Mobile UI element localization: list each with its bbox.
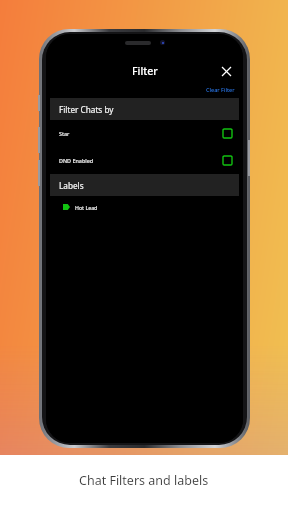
button[interactable]: Star [46, 120, 243, 147]
button[interactable]: Labels [50, 174, 239, 196]
staticText: Labels [59, 180, 84, 191]
staticText: Hot Lead [75, 204, 98, 211]
staticText: Star [59, 130, 70, 137]
staticText: Clear Filter [206, 86, 235, 93]
button[interactable]: Clear Filter [206, 84, 243, 95]
staticText: Chat Filters and labels [79, 472, 209, 489]
button[interactable]: Filter [126, 62, 164, 80]
staticText: Filter Chats by [59, 104, 114, 115]
button[interactable]: DND Enabled [46, 147, 243, 174]
button[interactable]: Hot Lead [46, 196, 243, 218]
button[interactable]: Close [216, 61, 236, 81]
staticText: Filter [132, 64, 158, 78]
button[interactable]: Filter Chats by [50, 98, 239, 120]
staticText: DND Enabled [59, 157, 94, 164]
